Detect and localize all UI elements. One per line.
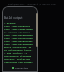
other: Scroll (36, 13, 38, 47)
staticText: Success: installed on Pixel_7 (4, 57, 34, 60)
staticText: 34 actionable tasks: 31 executed (4, 48, 34, 51)
staticText: > adb install -r app-debug.apk (4, 51, 34, 54)
staticText: Task :app:processDebugManifest (4, 36, 34, 39)
staticText: Launching com.example.demo/.Main (4, 60, 34, 63)
staticText: Task :app:mergeDebugResources (4, 33, 34, 36)
staticText: Performing Streamed Install (4, 54, 34, 57)
staticText: Task :app:dexBuilderDebug OK (4, 39, 34, 42)
staticText: Task :app:compileDebugKotlin (4, 27, 34, 30)
staticText: connected (15, 66, 28, 69)
staticText: BUILD SUCCESSFUL in 12s 430ms (4, 45, 34, 48)
staticText: root@device:~/project $ build.log (8, 2, 56, 5)
staticText: > gradle assembleDebug --stacktrace (4, 21, 34, 24)
button[interactable]: connected (2, 65, 38, 70)
staticText: w: unused variable 'tmpIndex' (4, 30, 34, 33)
button[interactable]: root@device:~/project $ build.log (0, 0, 64, 6)
staticText: Task :app:preBuild UP-TO-DATE (4, 24, 34, 27)
staticText: Build output (4, 16, 23, 20)
staticText: Task :app:packageDebug done (4, 42, 34, 45)
